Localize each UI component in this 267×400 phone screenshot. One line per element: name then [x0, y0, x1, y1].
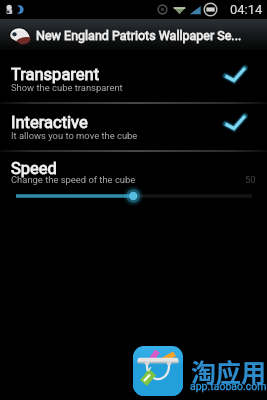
staticText: 淘应用 [191, 353, 267, 389]
button[interactable]: Speed [0, 150, 267, 206]
staticText: app.taobao.com [190, 380, 267, 392]
button[interactable]: New England Patriots Wallpaper Se... [0, 19, 267, 50]
button[interactable]: Transparent [0, 54, 267, 102]
staticText: Transparent [11, 65, 100, 84]
staticText: Show the cube transparent [11, 82, 123, 93]
staticText: Change the speed of the cube [11, 174, 136, 185]
staticText: New England Patriots Wallpaper Se... [36, 28, 242, 43]
button[interactable]: Interactive [0, 102, 267, 150]
staticText: Speed [11, 159, 57, 178]
button[interactable] [0, 188, 267, 204]
staticText: Interactive [11, 113, 88, 132]
staticText: It allows you to move the cube [11, 130, 138, 141]
staticText: 04:14 [230, 2, 263, 17]
staticText: 50 [245, 174, 256, 185]
